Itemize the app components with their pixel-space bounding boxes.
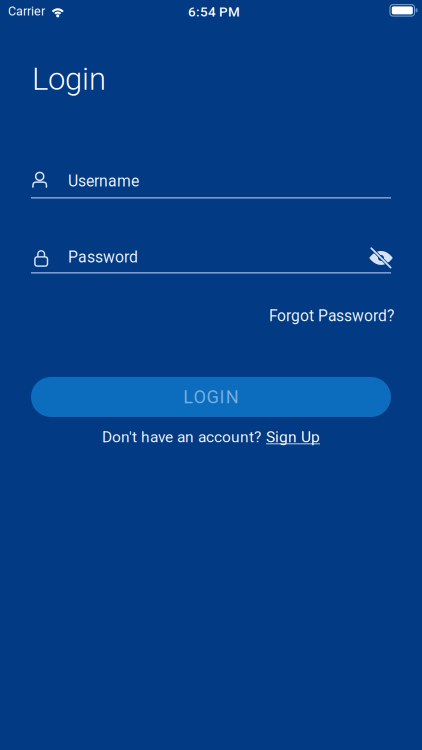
button[interactable]: Username bbox=[31, 166, 391, 197]
staticText: Forgot Password? bbox=[269, 307, 394, 325]
button[interactable]: Show password bbox=[364, 242, 398, 274]
button[interactable]: Password bbox=[31, 241, 351, 272]
staticText: Don't have an account? bbox=[102, 428, 261, 446]
staticText: Sign Up bbox=[266, 428, 320, 446]
staticText: 6:54 PM bbox=[188, 4, 240, 20]
button[interactable]: Sign Up bbox=[266, 428, 320, 446]
staticText: LOGIN bbox=[183, 386, 239, 408]
staticText: Username bbox=[68, 172, 139, 190]
staticText: Login bbox=[32, 61, 106, 97]
button[interactable]: LOGIN bbox=[31, 377, 391, 417]
staticText: Carrier bbox=[8, 4, 45, 18]
staticText: Password bbox=[68, 248, 138, 266]
button[interactable]: Forgot Password? bbox=[244, 305, 394, 327]
